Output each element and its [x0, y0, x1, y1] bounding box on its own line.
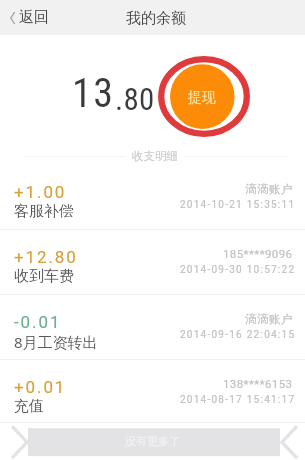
button[interactable]: 提现 — [158, 56, 250, 137]
staticText: +0.01 — [14, 377, 67, 397]
staticText: 2014-09-30 10:57:22 — [180, 264, 296, 276]
staticText: -0.01 — [14, 312, 62, 332]
staticText: 收到车费 — [14, 267, 74, 286]
staticText: .80 — [115, 81, 155, 117]
staticText: 8月工资转出 — [14, 332, 98, 352]
button[interactable]: -0.01 — [0, 295, 305, 360]
staticText: 2014-10-21 15:35:11 — [180, 199, 296, 211]
staticText: 138****6153 — [223, 377, 293, 390]
staticText: 充值 — [14, 397, 44, 416]
staticText: 收支明细 — [132, 149, 178, 163]
button[interactable]: +12.80 — [0, 230, 305, 295]
staticText: 返回 — [19, 8, 49, 27]
button[interactable]: +0.01 — [0, 360, 305, 423]
button[interactable]: 返回 — [0, 2, 61, 33]
staticText: 滴滴账户 — [245, 312, 293, 326]
staticText: 13 — [72, 70, 115, 117]
staticText: 提现 — [188, 89, 216, 107]
staticText: 滴滴账户 — [245, 182, 293, 196]
staticText: 客服补偿 — [14, 202, 74, 221]
button[interactable]: +1.00 — [0, 165, 305, 230]
staticText: 没有更多了 — [125, 434, 180, 448]
staticText: 185****9096 — [223, 247, 293, 260]
staticText: 2014-09-16 22:04:15 — [180, 329, 296, 341]
staticText: +12.80 — [14, 247, 78, 267]
staticText: 2014-08-17 15:41:17 — [180, 394, 296, 406]
staticText: 我的余额 — [126, 9, 186, 28]
button[interactable]: 没有更多了 — [0, 424, 305, 460]
staticText: +1.00 — [14, 182, 67, 202]
